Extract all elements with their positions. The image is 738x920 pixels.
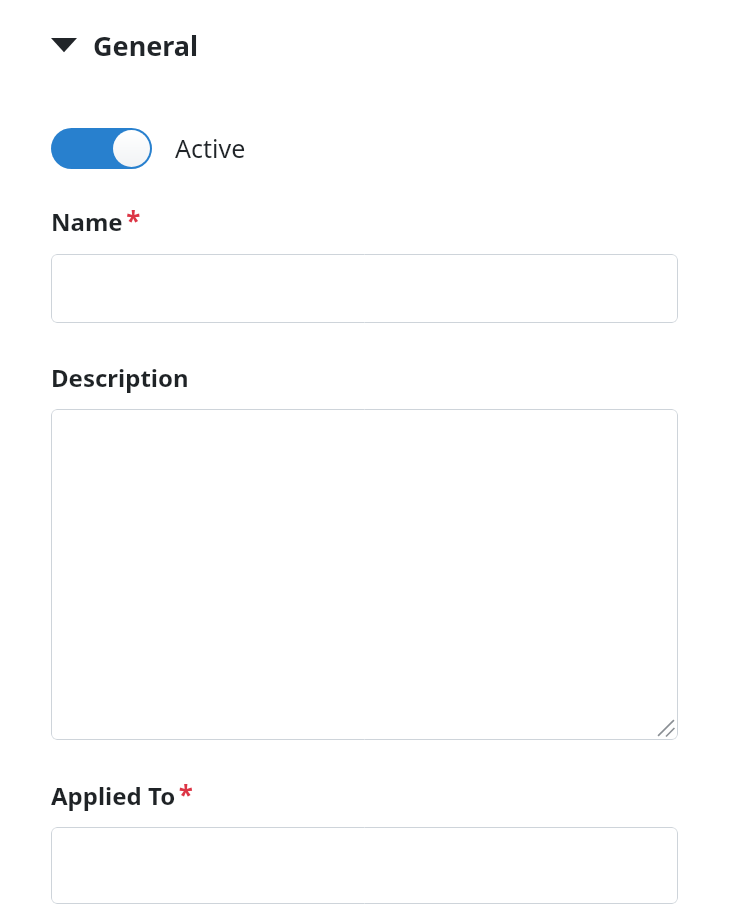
button[interactable] (51, 409, 678, 740)
button[interactable] (51, 254, 678, 323)
staticText: Active (175, 131, 246, 165)
staticText: Name * (51, 203, 141, 238)
button[interactable]: Collapse section (51, 26, 199, 64)
button[interactable]: Active (51, 126, 246, 170)
staticText: Applied To * (51, 777, 193, 812)
staticText: General (93, 27, 199, 64)
button[interactable] (51, 827, 678, 904)
staticText: Description (51, 361, 189, 394)
other: Collapse section (51, 37, 77, 53)
